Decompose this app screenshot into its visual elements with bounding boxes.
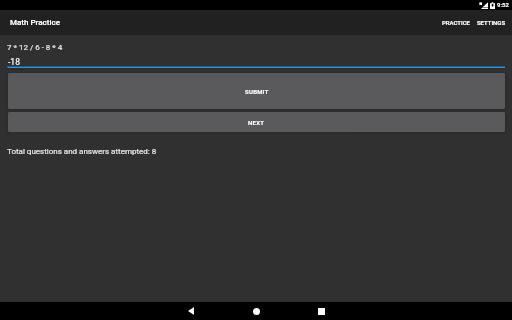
staticText: SUBMIT [245,88,269,95]
other: Battery [490,2,495,9]
staticText: Total questions and answers attempted: 8 [7,147,157,156]
staticText: PRACTICE [442,19,470,26]
staticText: NEXT [248,119,265,126]
other: Mobile signal [479,2,488,9]
button[interactable]: SUBMIT [8,73,505,109]
button[interactable]: -18 [7,54,505,70]
button[interactable]: Back [182,302,200,320]
staticText: 9:52 [497,1,509,8]
button[interactable]: Recent apps [312,302,330,320]
staticText: Math Practice [10,18,60,27]
button[interactable]: Home [247,302,265,320]
staticText: 7 * 12 / 6 - 8 * 4 [7,43,63,52]
staticText: -18 [8,57,20,67]
staticText: SETTINGS [477,19,506,26]
button[interactable]: SETTINGS [473,10,510,35]
button[interactable]: NEXT [8,112,505,132]
button[interactable]: PRACTICE [437,10,475,35]
